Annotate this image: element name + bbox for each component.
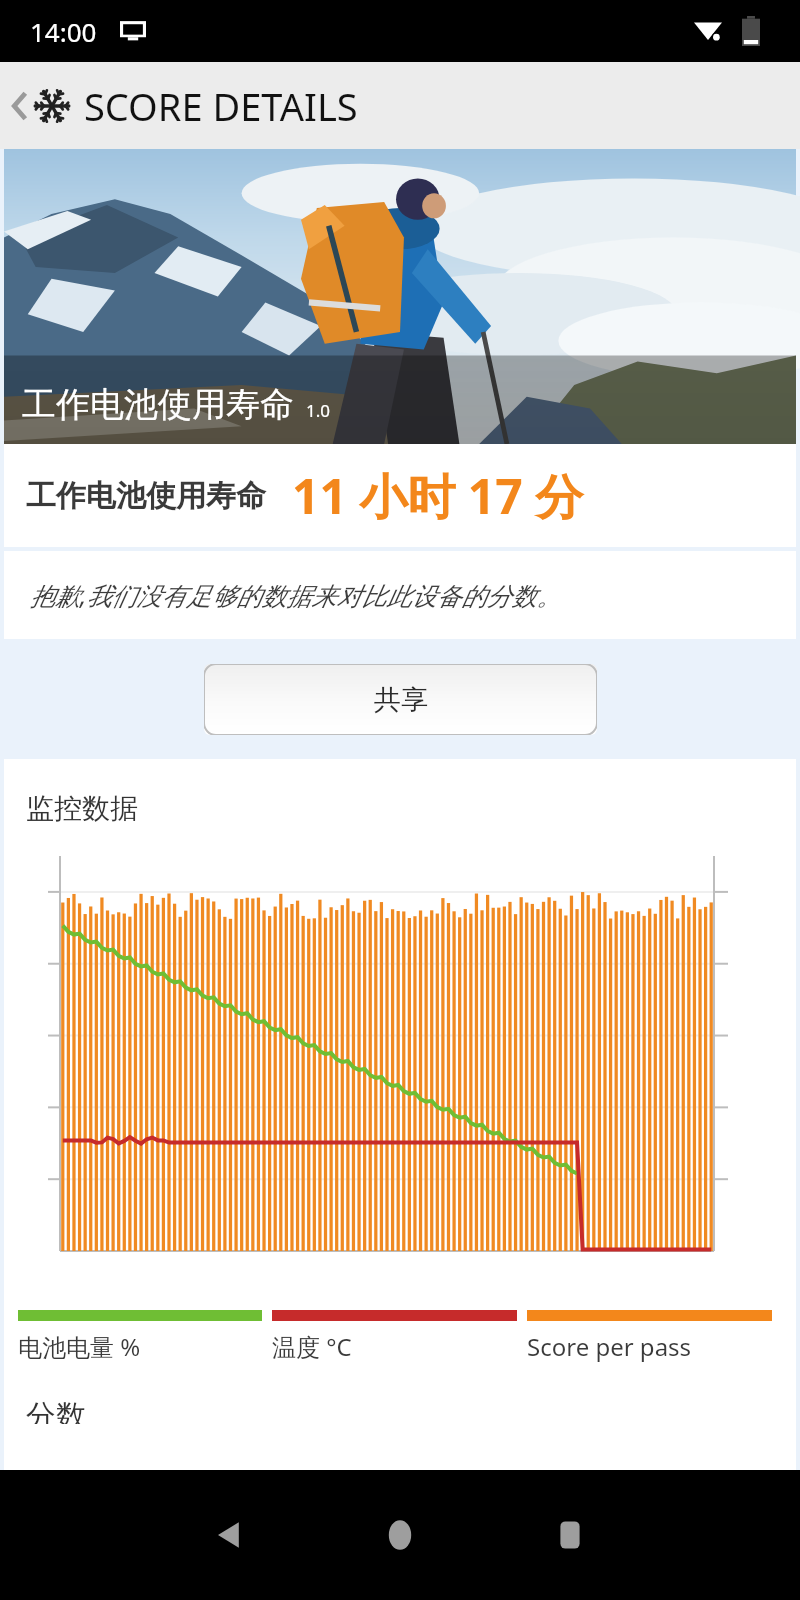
button[interactable]: Back <box>210 1515 250 1555</box>
staticText: Score per pass <box>527 1330 692 1363</box>
staticText: 共享 <box>374 683 428 717</box>
staticText: 监控数据 <box>26 791 138 826</box>
staticText: 11 小时 17 分 <box>292 463 584 529</box>
button[interactable]: Recents <box>550 1515 590 1555</box>
button[interactable]: 工作电池使用寿命 <box>4 444 796 547</box>
button[interactable]: 共享 <box>204 664 597 735</box>
staticText: 工作电池使用寿命 <box>22 383 294 426</box>
staticText: 抱歉,我们没有足够的数据来对比此设备的分数。 <box>30 578 562 612</box>
staticText: 温度 °C <box>272 1330 352 1363</box>
button[interactable]: Home <box>380 1515 420 1555</box>
staticText: 14:00 <box>30 14 97 49</box>
staticText: SCORE DETAILS <box>84 80 358 132</box>
button[interactable]: Back to score <box>0 62 800 149</box>
staticText: 工作电池使用寿命 <box>26 477 266 515</box>
staticText: 分数 <box>26 1397 86 1424</box>
button[interactable]: Work battery life benchmark <box>4 149 796 444</box>
staticText: 电池电量 % <box>18 1330 141 1363</box>
staticText: 1.0 <box>306 399 331 422</box>
